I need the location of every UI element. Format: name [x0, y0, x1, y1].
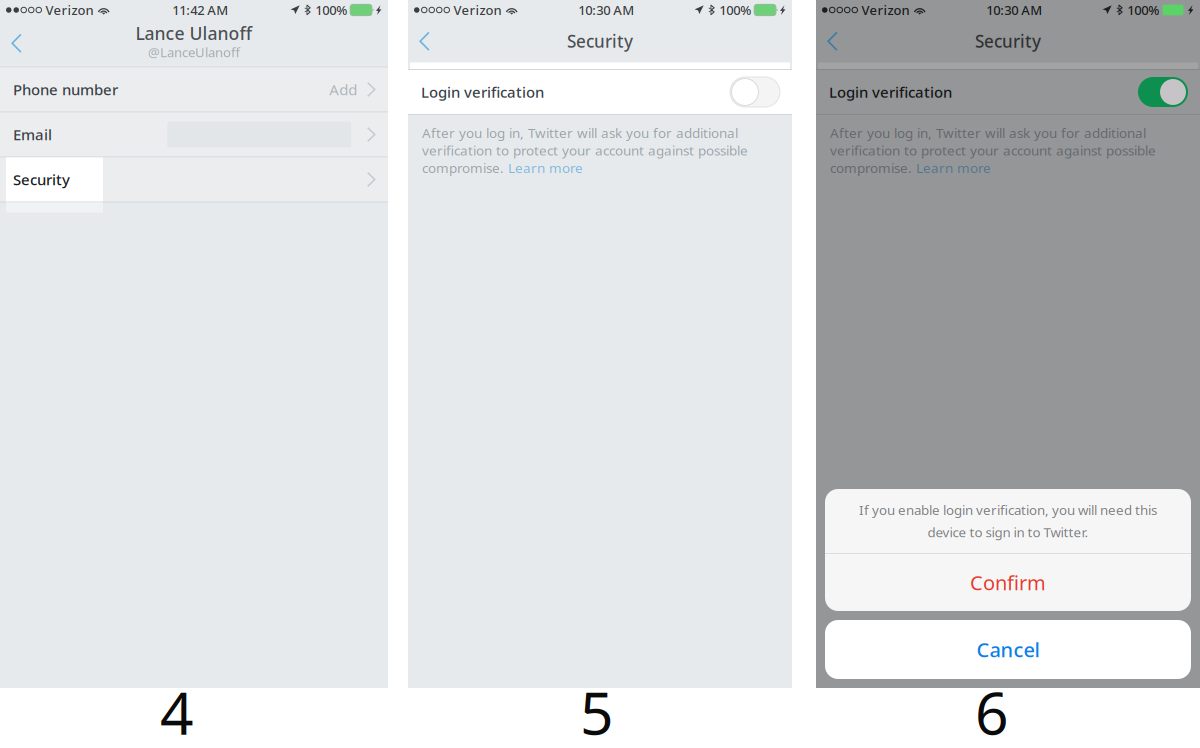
- staticText: If you enable login verification, you wi…: [859, 501, 1157, 519]
- button[interactable]: Back: [816, 18, 853, 64]
- staticText: Cancel: [976, 636, 1039, 663]
- staticText: 5: [580, 672, 614, 748]
- staticText: device to sign in to Twitter.: [927, 523, 1088, 541]
- staticText: verification to protect your account aga…: [422, 141, 748, 159]
- staticText: @LanceUlanoff: [148, 43, 240, 61]
- staticText: compromise.: [830, 159, 916, 177]
- staticText: Verizon: [861, 1, 909, 19]
- staticText: Learn more: [508, 159, 583, 177]
- staticText: 6: [975, 672, 1009, 748]
- staticText: After you log in, Twitter will ask you f…: [830, 124, 1146, 142]
- staticText: Email: [13, 124, 52, 145]
- staticText: After you log in, Twitter will ask you f…: [422, 124, 738, 142]
- staticText: Login verification: [829, 82, 952, 102]
- staticText: Confirm: [970, 569, 1046, 596]
- staticText: 100%: [719, 1, 751, 19]
- staticText: Add: [329, 79, 357, 100]
- button[interactable]: Phone number: [0, 67, 388, 111]
- button[interactable]: Email: [0, 112, 388, 156]
- staticText: compromise.: [422, 159, 508, 177]
- staticText: 100%: [1127, 1, 1159, 19]
- button[interactable]: Back: [0, 20, 37, 66]
- button[interactable]: Cancel: [825, 620, 1191, 679]
- staticText: Learn more: [916, 159, 991, 177]
- staticText: Verizon: [453, 1, 501, 19]
- button[interactable]: Login verification: [816, 70, 1200, 114]
- staticText: 100%: [315, 1, 347, 19]
- staticText: verification to protect your account aga…: [830, 141, 1156, 159]
- staticText: Security: [975, 30, 1041, 53]
- staticText: 10:30 AM: [986, 1, 1042, 19]
- staticText: Security: [13, 169, 70, 190]
- button[interactable]: Security: [0, 157, 388, 201]
- staticText: Security: [567, 30, 633, 53]
- staticText: 11:42 AM: [172, 1, 228, 19]
- staticText: 10:30 AM: [578, 1, 634, 19]
- button[interactable]: Back: [408, 18, 445, 64]
- staticText: 4: [160, 672, 194, 748]
- button[interactable]: Login verification: [408, 70, 792, 114]
- staticText: Verizon: [45, 1, 93, 19]
- staticText: Login verification: [421, 82, 544, 102]
- staticText: Phone number: [13, 79, 118, 100]
- staticText: Lance Ulanoff: [135, 21, 252, 45]
- button[interactable]: Confirm: [825, 554, 1191, 611]
